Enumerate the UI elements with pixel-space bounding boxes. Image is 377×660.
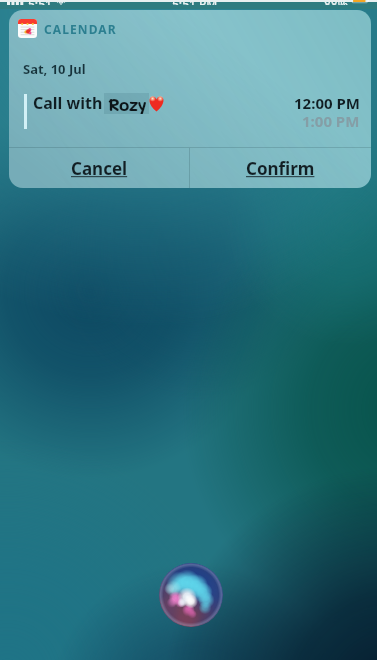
staticText: 88% (324, 0, 348, 5)
staticText: Confirm (246, 157, 315, 180)
staticText: Rozy (108, 93, 147, 114)
button[interactable]: Siri (159, 563, 223, 627)
button[interactable]: Cancel (9, 148, 189, 188)
staticText: 1:00 PM (302, 111, 360, 131)
staticText: Call with (33, 92, 103, 114)
staticText: Sat, 10 Jul (23, 60, 86, 78)
staticText: CALENDAR (44, 21, 117, 37)
staticText: 5:51 (28, 0, 52, 5)
staticText: 12:00 PM (294, 93, 360, 113)
button[interactable]: Confirm (190, 148, 371, 188)
staticText: 5:51 PM (172, 0, 218, 5)
staticText: Cancel (71, 157, 128, 180)
